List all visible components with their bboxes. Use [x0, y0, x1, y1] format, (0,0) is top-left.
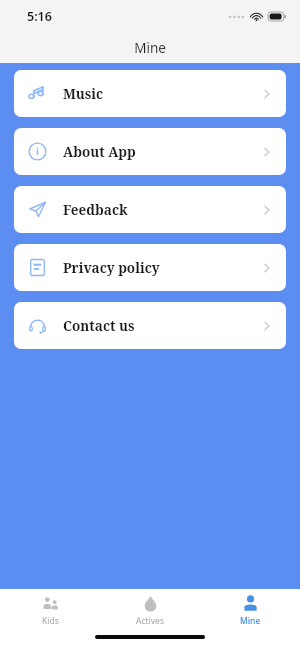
button[interactable]: About App [14, 128, 286, 175]
button[interactable]: Music [14, 70, 286, 117]
staticText: Mine [240, 615, 261, 627]
button[interactable]: Mine [200, 593, 300, 627]
staticText: Privacy policy [63, 259, 160, 277]
button[interactable]: Kids [0, 593, 100, 627]
staticText: Feedback [63, 201, 128, 219]
button[interactable]: Privacy policy [14, 244, 286, 291]
staticText: Kids [42, 615, 59, 627]
button[interactable]: Contact us [14, 302, 286, 349]
button[interactable]: Feedback [14, 186, 286, 233]
button[interactable]: Actives [100, 593, 200, 627]
staticText: Actives [136, 615, 164, 627]
staticText: Mine [134, 39, 166, 57]
staticText: 5:16 [27, 8, 52, 25]
staticText: Music [63, 85, 104, 103]
staticText: About App [63, 143, 136, 161]
staticText: Contact us [63, 317, 135, 335]
